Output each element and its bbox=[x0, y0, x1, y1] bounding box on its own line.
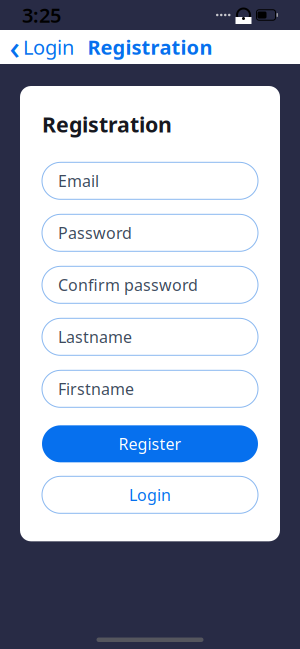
staticText: Registration bbox=[87, 34, 212, 60]
button[interactable]: Register bbox=[42, 425, 258, 462]
button[interactable]: Password bbox=[42, 214, 258, 251]
staticText: Login bbox=[129, 484, 171, 505]
staticText: Confirm password bbox=[58, 274, 198, 295]
staticText: ‹ bbox=[9, 26, 19, 68]
button[interactable]: Lastname bbox=[42, 318, 258, 355]
staticText: Email bbox=[58, 170, 99, 191]
button[interactable]: Login bbox=[42, 476, 258, 513]
staticText: Password bbox=[58, 222, 132, 243]
button[interactable]: Email bbox=[42, 162, 258, 199]
staticText: Register bbox=[118, 433, 181, 454]
staticText: Login bbox=[23, 34, 74, 60]
staticText: Registration bbox=[42, 110, 172, 138]
staticText: Lastname bbox=[58, 326, 132, 347]
staticText: Firstname bbox=[58, 378, 134, 399]
button[interactable]: Confirm password bbox=[42, 266, 258, 303]
button[interactable]: ‹ bbox=[0, 28, 74, 66]
staticText: 3:25 bbox=[22, 2, 61, 28]
button[interactable]: Firstname bbox=[42, 370, 258, 407]
